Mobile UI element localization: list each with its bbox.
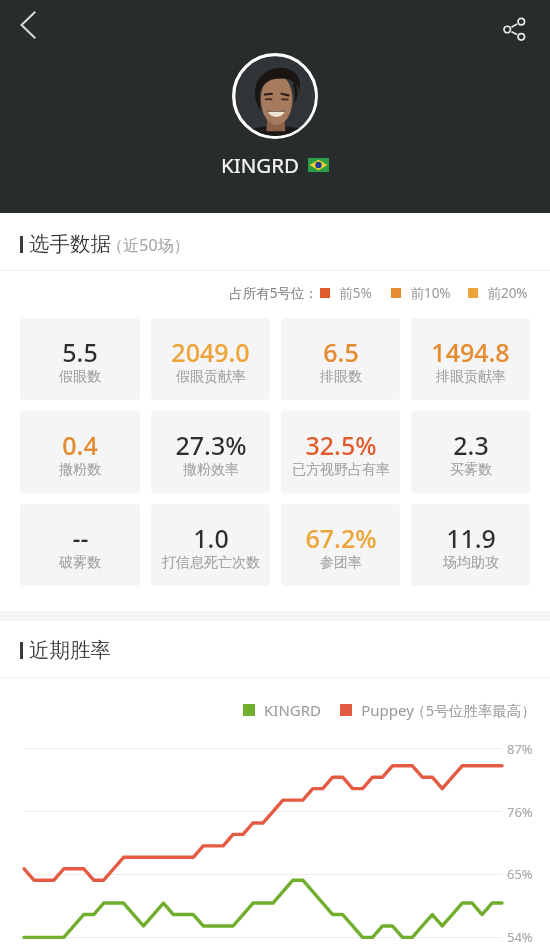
button[interactable]: 67.2%: [281, 504, 400, 586]
staticText: KINGRD: [264, 700, 321, 720]
button[interactable]: Back: [4, 1, 52, 49]
staticText: 排眼数: [320, 368, 362, 386]
staticText: 前5%: [339, 284, 372, 302]
staticText: （近50场）: [107, 234, 190, 256]
staticText: 买雾数: [450, 461, 492, 479]
staticText: 近期胜率: [29, 637, 111, 663]
staticText: 前10%: [410, 284, 451, 302]
staticText: 排眼贡献率: [436, 368, 506, 386]
staticText: 前20%: [487, 284, 528, 302]
button[interactable]: --: [20, 504, 140, 586]
staticText: 打信息死亡次数: [162, 554, 260, 572]
button[interactable]: 6.5: [281, 318, 400, 400]
staticText: 占所有5号位：: [229, 284, 318, 302]
button[interactable]: 5.5: [20, 318, 140, 400]
staticText: 破雾数: [59, 554, 101, 572]
button[interactable]: 0.4: [20, 411, 140, 493]
staticText: 67.2%: [305, 521, 377, 555]
staticText: 27.3%: [175, 428, 247, 462]
staticText: 1.0: [193, 521, 229, 555]
staticText: 87%: [507, 740, 533, 758]
staticText: 0.4: [62, 428, 98, 462]
staticText: 撒粉效率: [183, 461, 239, 479]
button[interactable]: 32.5%: [281, 411, 400, 493]
staticText: （5号位胜率最高）: [411, 700, 536, 720]
button[interactable]: 1.0: [151, 504, 270, 586]
staticText: 撒粉数: [59, 461, 101, 479]
button[interactable]: 11.9: [411, 504, 530, 586]
staticText: 已方视野占有率: [292, 461, 390, 479]
staticText: 76%: [507, 803, 533, 821]
button[interactable]: Share: [490, 5, 538, 53]
staticText: 32.5%: [305, 428, 377, 462]
staticText: 场均助攻: [443, 554, 499, 572]
staticText: 2.3: [453, 428, 489, 462]
staticText: Puppey: [361, 700, 414, 720]
staticText: 假眼贡献率: [176, 368, 246, 386]
button[interactable]: 1494.8: [411, 318, 530, 400]
staticText: 6.5: [323, 335, 359, 369]
button[interactable]: 27.3%: [151, 411, 270, 493]
staticText: 54%: [507, 928, 533, 946]
staticText: --: [72, 521, 89, 555]
staticText: 65%: [507, 865, 533, 883]
button[interactable]: 2049.0: [151, 318, 270, 400]
staticText: 假眼数: [59, 368, 101, 386]
staticText: 选手数据: [29, 231, 111, 257]
staticText: 2049.0: [171, 335, 250, 369]
button[interactable]: 2.3: [411, 411, 530, 493]
staticText: 11.9: [446, 521, 496, 555]
staticText: 5.5: [62, 335, 98, 369]
staticText: 1494.8: [431, 335, 510, 369]
staticText: 参团率: [320, 554, 362, 572]
staticText: KINGRD: [221, 151, 299, 179]
